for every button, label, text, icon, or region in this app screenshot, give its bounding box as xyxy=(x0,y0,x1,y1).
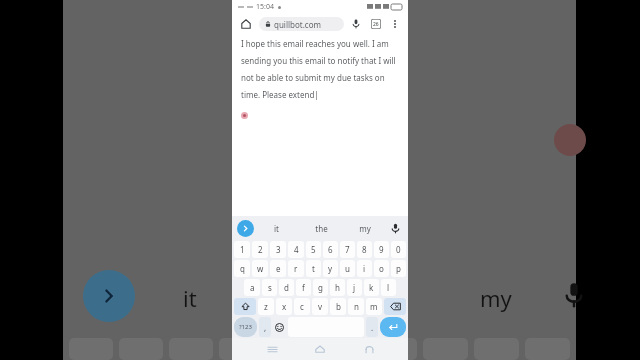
button[interactable]: 4 xyxy=(288,241,304,258)
button[interactable]: r xyxy=(288,260,304,277)
button[interactable]: j xyxy=(347,279,362,296)
button[interactable]: 5 xyxy=(306,241,321,258)
button[interactable]: 0 xyxy=(391,241,406,258)
staticText: p xyxy=(396,263,401,274)
button[interactable]: Home xyxy=(311,340,329,358)
button[interactable]: Shift xyxy=(234,298,256,315)
staticText: y xyxy=(328,263,333,274)
button[interactable]: 9 xyxy=(374,241,389,258)
staticText: v xyxy=(318,301,323,312)
staticText: g xyxy=(318,282,323,293)
staticText: h xyxy=(335,282,340,293)
button[interactable]: u xyxy=(340,260,355,277)
staticText: not be able to submit my due tasks on xyxy=(241,72,385,83)
button[interactable]: l xyxy=(381,279,396,296)
button[interactable]: c xyxy=(294,298,310,315)
staticText: 1 xyxy=(240,244,245,255)
button[interactable]: k xyxy=(364,279,379,296)
button[interactable]: e xyxy=(270,260,286,277)
button[interactable]: Back xyxy=(360,340,378,358)
button[interactable]: Enter xyxy=(380,317,406,337)
button[interactable]: the xyxy=(299,216,343,240)
button[interactable]: Emoji xyxy=(273,317,286,337)
button[interactable]: Recent apps xyxy=(263,340,281,358)
button[interactable]: Backspace xyxy=(384,298,406,315)
button[interactable]: it xyxy=(254,216,299,240)
staticText: it xyxy=(183,283,197,313)
button[interactable]: n xyxy=(348,298,364,315)
button[interactable]: w xyxy=(252,260,268,277)
button[interactable]: x xyxy=(276,298,292,315)
staticText: r xyxy=(294,263,298,274)
button[interactable]: b xyxy=(330,298,346,315)
button[interactable]: p xyxy=(391,260,406,277)
staticText: e xyxy=(276,263,281,274)
button[interactable]: my xyxy=(343,216,387,240)
button[interactable]: f xyxy=(296,279,311,296)
button[interactable]: . xyxy=(366,317,378,337)
staticText: 6 xyxy=(328,244,333,255)
staticText: ?123 xyxy=(239,323,252,331)
staticText: q xyxy=(240,263,245,274)
button[interactable]: Voice input xyxy=(387,220,403,236)
staticText: u xyxy=(345,263,350,274)
button[interactable]: t xyxy=(306,260,321,277)
staticText: j xyxy=(353,282,356,293)
button[interactable]: q xyxy=(234,260,250,277)
button[interactable]: a xyxy=(244,279,260,296)
staticText: 2 xyxy=(258,244,263,255)
button[interactable]: 3 xyxy=(270,241,286,258)
staticText: it xyxy=(274,223,279,234)
button[interactable]: h xyxy=(330,279,345,296)
button[interactable]: Voice search xyxy=(349,17,363,31)
button[interactable]: ?123 xyxy=(234,317,257,337)
button[interactable]: 7 xyxy=(340,241,355,258)
button[interactable]: , xyxy=(259,317,271,337)
staticText: f xyxy=(302,282,305,293)
staticText: 5 xyxy=(311,244,316,255)
button[interactable]: 6 xyxy=(323,241,338,258)
button[interactable]: o xyxy=(374,260,389,277)
staticText: my xyxy=(359,223,371,234)
staticText: quillbot.com xyxy=(274,19,322,30)
button[interactable]: 1 xyxy=(234,241,250,258)
staticText: l xyxy=(387,282,390,293)
button[interactable]: Tabs xyxy=(369,17,383,31)
staticText: a xyxy=(250,282,255,293)
staticText: t xyxy=(312,263,315,274)
button[interactable]: s xyxy=(262,279,277,296)
staticText: m xyxy=(370,301,378,312)
button[interactable]: i xyxy=(357,260,372,277)
staticText: o xyxy=(379,263,384,274)
button[interactable]: y xyxy=(323,260,338,277)
staticText: k xyxy=(369,282,374,293)
staticText: . xyxy=(371,322,374,333)
button[interactable]: 2 xyxy=(252,241,268,258)
staticText: 0 xyxy=(396,244,401,255)
staticText: sending you this email to notify that I … xyxy=(241,55,396,66)
button[interactable]: quillbot.com xyxy=(259,17,344,31)
staticText: , xyxy=(264,322,267,333)
staticText: I hope this email reaches you well. I am xyxy=(241,38,389,49)
staticText: d xyxy=(284,282,289,293)
button[interactable]: m xyxy=(366,298,382,315)
staticText: 7 xyxy=(345,244,350,255)
staticText: the xyxy=(315,223,328,234)
staticText: 3 xyxy=(276,244,281,255)
button[interactable]: z xyxy=(258,298,274,315)
staticText: 4 xyxy=(294,244,299,255)
staticText: 8 xyxy=(362,244,367,255)
button[interactable]: v xyxy=(312,298,328,315)
button[interactable]: More options xyxy=(388,17,402,31)
staticText: z xyxy=(264,301,268,312)
button[interactable]: Home xyxy=(238,16,254,32)
staticText: n xyxy=(354,301,359,312)
staticText: 9 xyxy=(379,244,384,255)
button[interactable]: d xyxy=(279,279,294,296)
button[interactable]: 8 xyxy=(357,241,372,258)
button[interactable]: Expand suggestions xyxy=(237,220,254,237)
staticText: time. Please extend| xyxy=(241,89,319,100)
button[interactable]: g xyxy=(313,279,328,296)
staticText: 26 xyxy=(373,21,379,28)
